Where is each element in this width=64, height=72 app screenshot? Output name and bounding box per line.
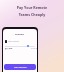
staticText: Get Started — [14, 66, 27, 69]
staticText: $2,480 — [5, 47, 13, 50]
staticText: Pay Your Remote Teams Cheaply — [0, 5, 64, 17]
staticText: 0.5% fee — [31, 47, 37, 49]
staticText: Send money — [8, 40, 19, 43]
staticText: SendGo — [15, 32, 25, 35]
button[interactable]: Get Started — [4, 64, 36, 70]
